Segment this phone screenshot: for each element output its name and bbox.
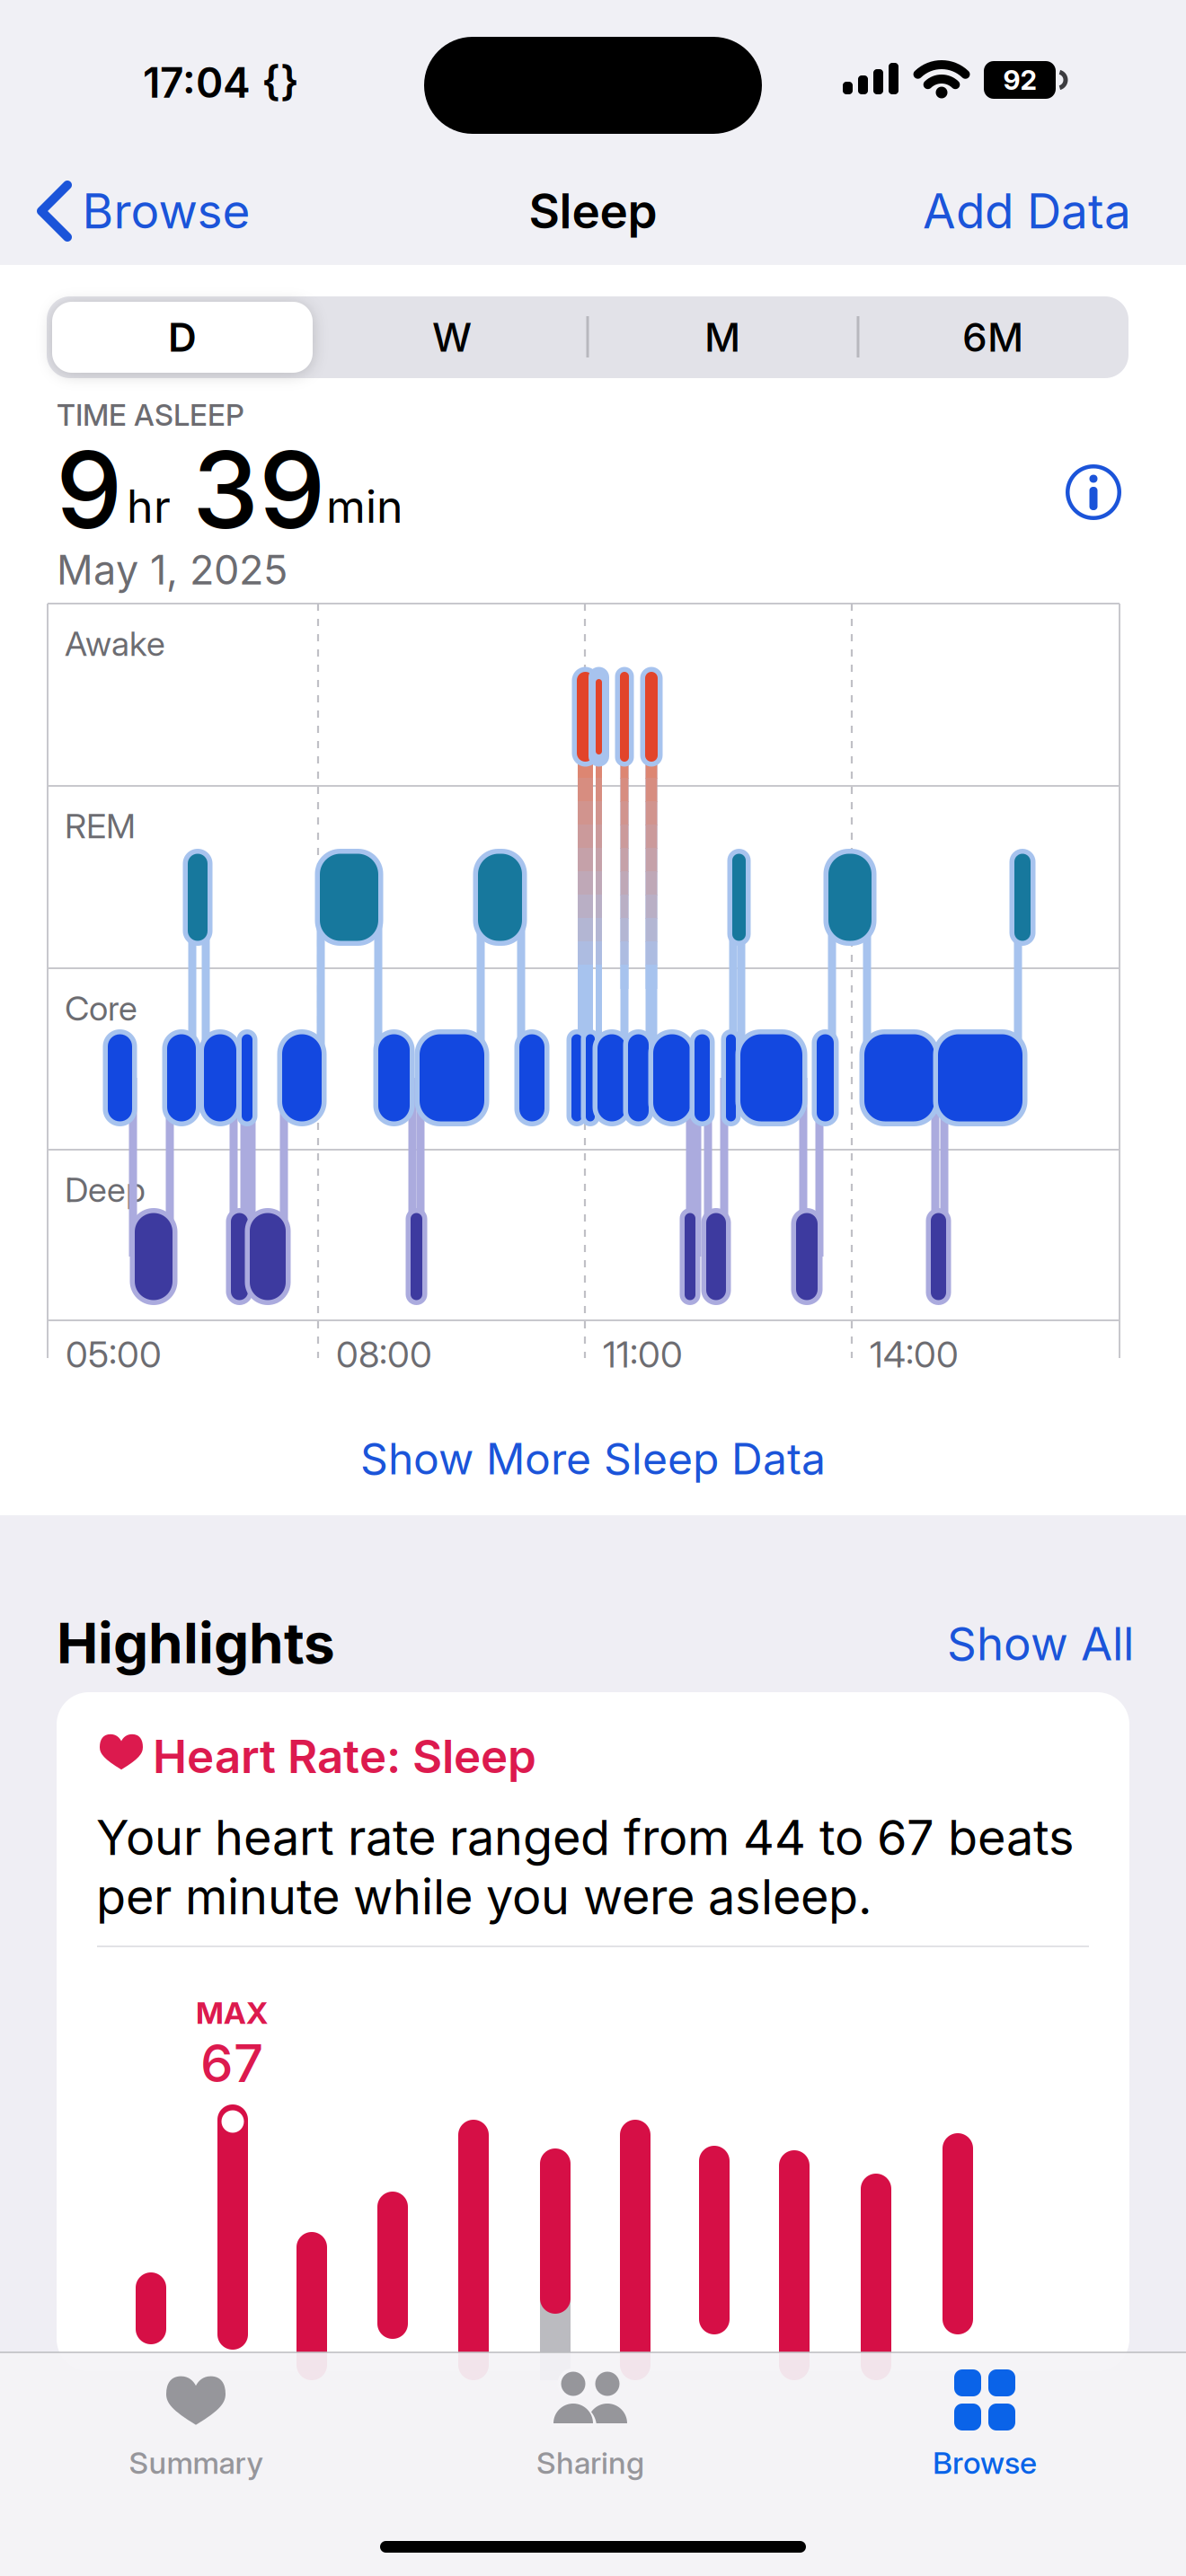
staticText: Summary [129,2442,263,2484]
staticText: MAX [196,1992,268,2034]
staticText: 6M [962,310,1023,365]
staticText: 17:04 {} [143,54,299,111]
button[interactable]: Show All [947,1612,1134,1676]
button[interactable]: Summary [61,2353,331,2506]
staticText: 9 [56,416,122,563]
button[interactable]: Heart Rate: Sleep [0,0,1186,2576]
staticText: Browse [933,2442,1037,2484]
staticText: M [704,310,740,365]
staticText: per minute while you were asleep. [96,1863,872,1930]
staticText: 92 [1003,61,1036,99]
button[interactable]: Show More Sleep Data [360,1429,826,1489]
staticText: Sharing [536,2442,644,2484]
staticText: Add Data [923,178,1131,244]
button[interactable]: Add Data [923,178,1131,244]
staticText: Core [65,984,137,1032]
button[interactable]: About Time Asleep [1065,463,1122,521]
staticText: W [432,310,472,365]
staticText: Show More Sleep Data [360,1429,826,1489]
button[interactable]: Browse [850,2353,1120,2506]
button[interactable]: 6M [863,300,1123,375]
staticText: Highlights [57,1604,335,1682]
staticText: May 1, 2025 [57,542,288,598]
staticText: Show All [947,1612,1134,1676]
button[interactable]: D [52,300,313,375]
staticText: hr [127,475,171,538]
staticText: 05:00 [66,1329,162,1379]
staticText: TIME ASLEEP [57,394,244,436]
staticText: Deep [65,1166,146,1213]
staticText: Heart Rate: Sleep [153,1725,536,1788]
staticText: REM [65,802,136,850]
staticText: 14:00 [870,1329,959,1379]
staticText: Browse [82,178,250,244]
staticText: Your heart rate ranged from 44 to 67 bea… [96,1804,1075,1871]
staticText: 08:00 [336,1329,432,1379]
staticText: 39 [192,416,325,563]
staticText: 67 [200,2027,263,2099]
button[interactable]: Sharing [456,2353,725,2506]
button[interactable]: M [592,300,853,375]
staticText: 11:00 [603,1329,683,1379]
staticText: min [326,475,403,538]
button[interactable]: W [322,300,582,375]
staticText: Awake [65,620,165,667]
staticText: Sleep [529,178,657,244]
staticText: D [168,310,197,365]
button[interactable]: Back [9,171,279,251]
